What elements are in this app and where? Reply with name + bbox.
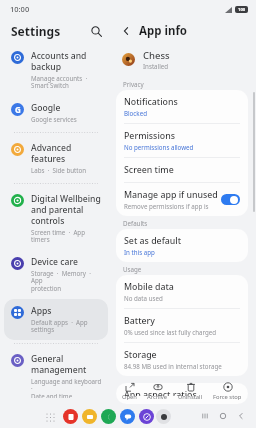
- button[interactable]: Office: [63, 409, 78, 424]
- button[interactable]: Chess: [116, 44, 248, 77]
- button[interactable]: All apps: [44, 411, 56, 423]
- staticText: G: [15, 104, 21, 115]
- staticText: 0% used since last fully charged: [124, 328, 217, 336]
- staticText: Storage · Memory · App protection: [31, 269, 103, 293]
- button[interactable]: Storage: [116, 343, 248, 376]
- button[interactable]: Battery: [116, 309, 248, 342]
- staticText: 84.98 MB used in internal storage: [124, 362, 222, 370]
- button[interactable]: Mobile data: [116, 275, 248, 308]
- staticText: Blocked: [124, 109, 147, 117]
- staticText: No permissions allowed: [124, 143, 194, 151]
- staticText: App aspect ratios: [124, 389, 197, 396]
- button[interactable]: Recent app: [156, 409, 171, 424]
- staticText: Privacy: [123, 80, 144, 88]
- staticText: Apps: [31, 305, 52, 317]
- staticText: Language and keyboard · Date and time: [31, 377, 103, 398]
- staticText: Advanced features: [31, 142, 72, 165]
- staticText: Screen time · App timers: [31, 228, 103, 244]
- button[interactable]: Accounts and backup: [4, 44, 108, 96]
- button[interactable]: Home: [214, 407, 232, 425]
- staticText: Screen time: [124, 164, 174, 176]
- staticText: 100: [238, 7, 246, 13]
- button[interactable]: Recents: [196, 407, 214, 425]
- staticText: Settings: [11, 23, 61, 39]
- staticText: Defaults: [123, 219, 148, 227]
- button[interactable]: Phone: [101, 409, 116, 424]
- staticText: Usage: [123, 265, 142, 273]
- button[interactable]: Manage app if unused: [116, 183, 248, 216]
- button[interactable]: Uninstall: [174, 380, 207, 403]
- staticText: No data used: [124, 294, 163, 302]
- staticText: Installed: [143, 62, 169, 70]
- button[interactable]: Back: [232, 407, 250, 425]
- staticText: Permissions: [124, 130, 175, 142]
- button[interactable]: Digital Wellbeing and parental controls: [4, 187, 108, 250]
- button[interactable]: Set as default: [116, 229, 248, 262]
- button[interactable]: Browser: [139, 409, 154, 424]
- staticText: Uninstall: [178, 393, 203, 401]
- button[interactable]: G: [4, 96, 108, 129]
- button[interactable]: Advanced features: [4, 136, 108, 180]
- staticText: Digital Wellbeing and parental controls: [31, 193, 101, 227]
- staticText: Accounts and backup: [31, 50, 87, 73]
- staticText: Storage: [124, 349, 157, 361]
- staticText: Mobile data: [124, 281, 174, 293]
- staticText: Labs · Side button: [31, 166, 87, 174]
- button[interactable]: Force stop: [209, 380, 246, 403]
- staticText: Device care: [31, 256, 78, 268]
- staticText: App info: [139, 23, 188, 39]
- staticText: Notifications: [124, 96, 178, 108]
- button[interactable]: Back: [116, 21, 136, 41]
- staticText: Set as default: [124, 235, 182, 247]
- button[interactable]: Manage app if unused toggle: [221, 194, 240, 205]
- staticText: Default apps · App settings: [31, 318, 88, 334]
- staticText: Manage app if unused: [124, 189, 218, 201]
- button[interactable]: Notifications: [116, 90, 248, 123]
- button[interactable]: Open: [118, 380, 141, 403]
- staticText: Remove permissions if app is unused: [124, 202, 221, 210]
- button[interactable]: General management: [4, 347, 108, 404]
- staticText: General management: [31, 353, 87, 376]
- staticText: Google services: [31, 115, 77, 123]
- button[interactable]: Notes: [82, 409, 97, 424]
- staticText: Force stop: [213, 393, 242, 401]
- button[interactable]: Permissions: [116, 124, 248, 157]
- staticText: In this app: [124, 248, 155, 256]
- button[interactable]: Apps: [4, 299, 108, 340]
- button[interactable]: Archive: [143, 380, 172, 403]
- staticText: Open: [122, 393, 137, 401]
- button[interactable]: Search: [86, 21, 106, 41]
- button[interactable]: App aspect ratios: [116, 383, 248, 404]
- button[interactable]: Messages: [120, 409, 135, 424]
- button[interactable]: Device care: [4, 250, 108, 299]
- staticText: Archive: [147, 393, 168, 401]
- staticText: Battery: [124, 315, 155, 327]
- staticText: Google: [31, 102, 61, 114]
- staticText: Manage accounts · Smart Switch: [31, 74, 88, 90]
- staticText: 10:00: [10, 4, 30, 14]
- button[interactable]: Screen time: [116, 158, 248, 182]
- staticText: Chess: [143, 49, 170, 62]
